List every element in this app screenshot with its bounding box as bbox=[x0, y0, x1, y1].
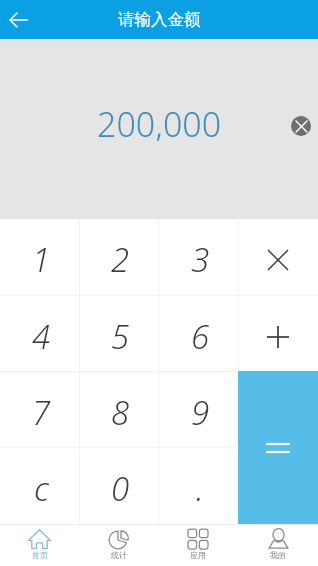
staticText: 8 bbox=[111, 390, 130, 435]
staticText: 5 bbox=[111, 314, 130, 359]
button[interactable]: 1 bbox=[0, 219, 79, 296]
staticText: 0 bbox=[111, 466, 130, 511]
button[interactable]: c bbox=[0, 448, 79, 524]
button[interactable]: 3 bbox=[158, 219, 238, 296]
staticText: 请输入金额 bbox=[118, 9, 201, 30]
staticText: 2 bbox=[111, 237, 130, 282]
button[interactable]: 统计 bbox=[79, 524, 158, 566]
button[interactable]: Multiply bbox=[238, 219, 318, 296]
staticText: 6 bbox=[191, 314, 210, 359]
staticText: c bbox=[34, 466, 49, 511]
button[interactable]: 2 bbox=[79, 219, 158, 296]
button[interactable]: Key bbox=[238, 448, 318, 524]
button[interactable]: . bbox=[158, 448, 238, 524]
button[interactable]: 4 bbox=[0, 296, 79, 372]
staticText: 4 bbox=[32, 314, 51, 359]
staticText: 统计 bbox=[111, 550, 127, 560]
button[interactable]: Back bbox=[0, 0, 36, 39]
button[interactable]: 0 bbox=[79, 448, 158, 524]
button[interactable]: 9 bbox=[158, 372, 238, 448]
staticText: 7 bbox=[32, 390, 51, 435]
button[interactable]: 5 bbox=[79, 296, 158, 372]
button[interactable]: Equals bbox=[238, 371, 318, 524]
staticText: 应用 bbox=[190, 550, 206, 560]
button[interactable]: Clear bbox=[291, 116, 311, 136]
staticText: 3 bbox=[191, 237, 210, 282]
button[interactable]: 我的 bbox=[238, 524, 318, 566]
staticText: 1 bbox=[32, 237, 51, 282]
staticText: . bbox=[196, 466, 204, 511]
button[interactable]: Plus bbox=[238, 296, 318, 372]
button[interactable]: 7 bbox=[0, 372, 79, 448]
button[interactable]: 应用 bbox=[158, 524, 238, 566]
staticText: 我的 bbox=[270, 550, 286, 560]
staticText: 首页 bbox=[32, 550, 48, 560]
staticText: 200,000 bbox=[97, 101, 222, 141]
button[interactable]: 8 bbox=[79, 372, 158, 448]
button[interactable]: 6 bbox=[158, 296, 238, 372]
button[interactable]: 首页 bbox=[0, 524, 79, 566]
button[interactable]: Key bbox=[238, 372, 318, 448]
staticText: 9 bbox=[191, 390, 210, 435]
